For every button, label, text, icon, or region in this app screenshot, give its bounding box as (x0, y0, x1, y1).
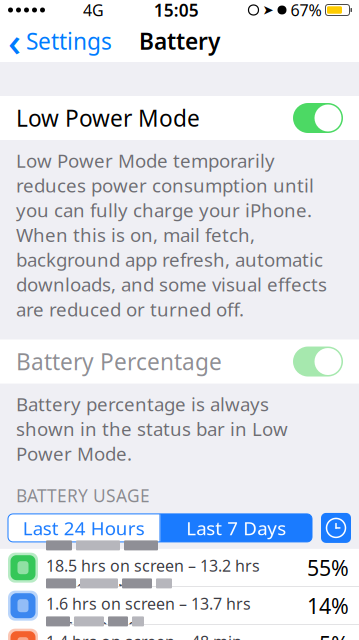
staticText: 5% (319, 629, 349, 640)
button[interactable]: 1.6 hrs on screen – 13.7 hrs background (0, 586, 359, 624)
staticText: ‹ (8, 14, 21, 67)
staticText: 55% (307, 553, 349, 582)
staticText: Last 24 Hours (23, 515, 145, 540)
button[interactable]: Low Power Mode (0, 96, 359, 140)
staticText: 4G (83, 0, 104, 21)
staticText: Battery Percentage (16, 346, 222, 377)
button[interactable]: Battery Percentage (0, 339, 359, 383)
staticText: BATTERY USAGE (16, 484, 150, 507)
staticText: Low Power Mode temporarily reduces power… (16, 148, 327, 321)
staticText: 18.5 hrs on screen – 13.2 hrs background (46, 555, 260, 597)
staticText: ➤ (262, 2, 273, 17)
staticText: 67% (290, 0, 321, 21)
staticText: 15:05 (154, 0, 199, 21)
staticText: Battery percentage is always shown in th… (16, 391, 288, 466)
staticText: 14% (307, 591, 349, 620)
button[interactable]: Last 24 Hours (8, 514, 159, 542)
button[interactable]: Show usage by time (321, 513, 351, 543)
button[interactable]: 1.4 hrs on screen – 48 min background (0, 624, 359, 640)
staticText: 1.6 hrs on screen – 13.7 hrs background (46, 593, 251, 635)
staticText: Settings (26, 26, 112, 56)
staticText: Battery (139, 26, 220, 56)
staticText: Last 7 Days (186, 515, 286, 540)
staticText: Low Power Mode (16, 103, 200, 133)
button[interactable]: 18.5 hrs on screen – 13.2 hrs background (0, 549, 359, 586)
button[interactable]: Last 7 Days (160, 514, 312, 542)
button[interactable]: ‹ (0, 20, 112, 62)
staticText: 1.4 hrs on screen – 48 min background (46, 631, 242, 640)
